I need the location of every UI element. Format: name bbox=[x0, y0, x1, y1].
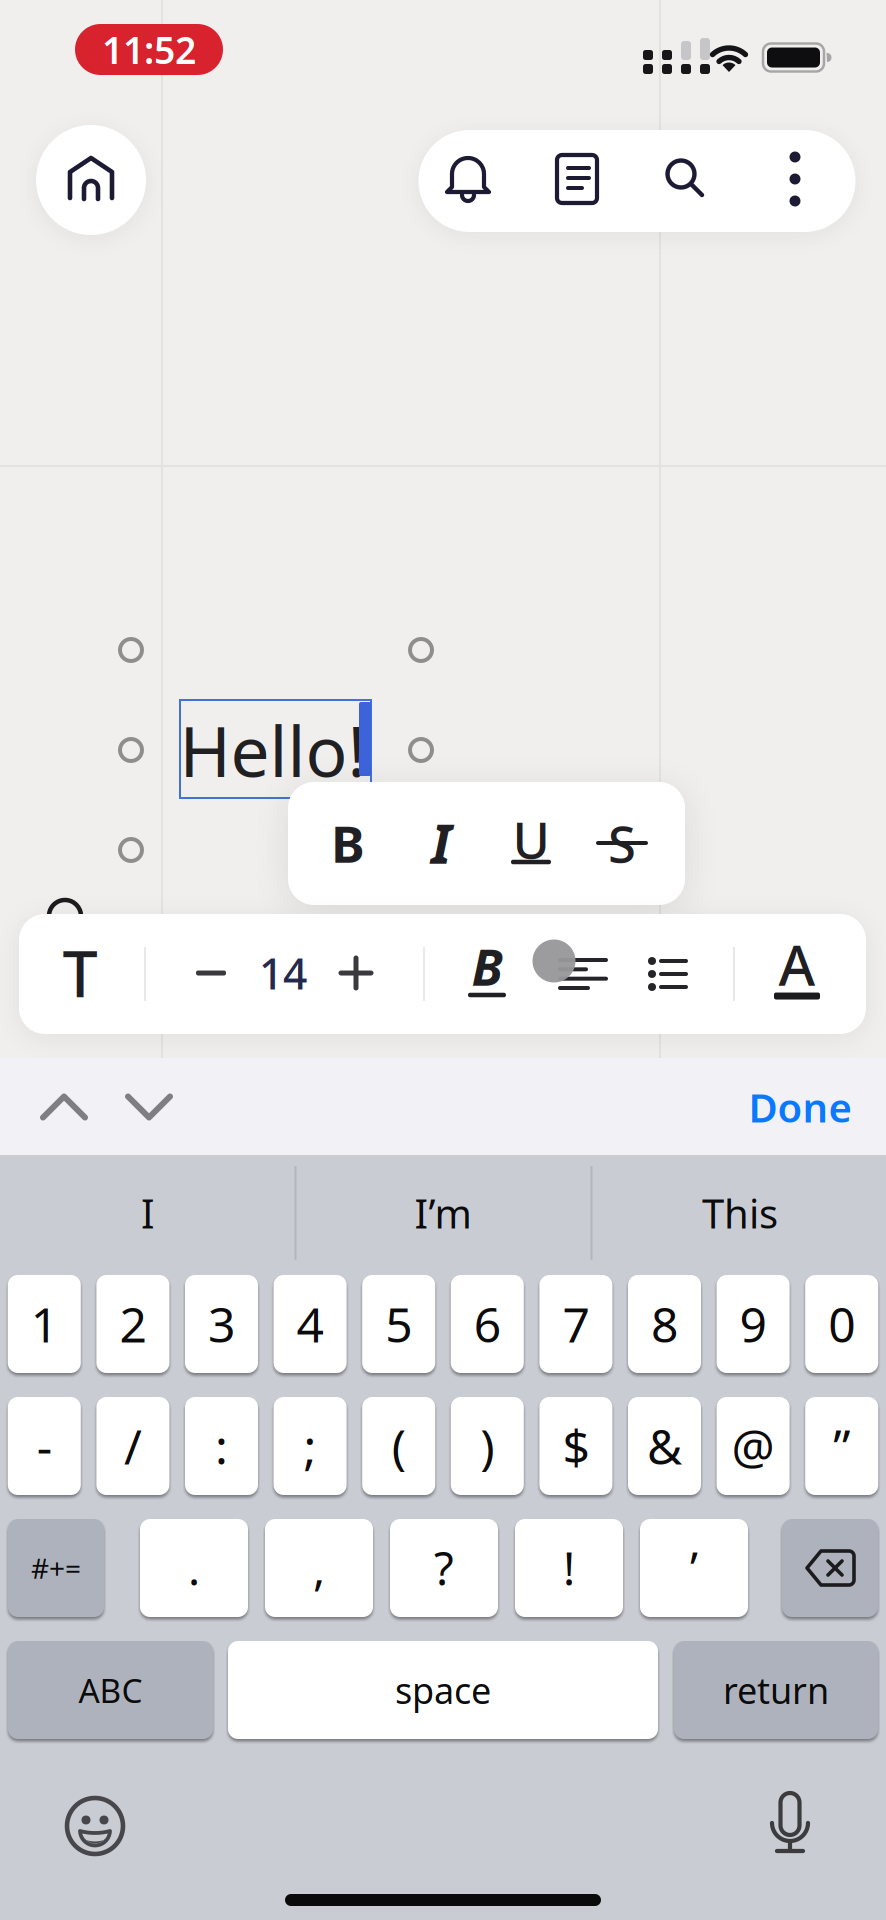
button[interactable]: Text style bbox=[45, 933, 115, 1013]
staticText: / bbox=[124, 1414, 142, 1478]
staticText: ( bbox=[392, 1414, 406, 1478]
staticText: ! bbox=[563, 1538, 575, 1598]
staticText: S bbox=[608, 809, 636, 877]
staticText: 14 bbox=[259, 945, 307, 1001]
button[interactable]: Notifications bbox=[442, 153, 494, 207]
staticText: - bbox=[37, 1414, 52, 1478]
staticText: B bbox=[331, 809, 365, 877]
button[interactable]: #+= bbox=[8, 1519, 104, 1617]
staticText: ; bbox=[304, 1414, 317, 1478]
staticText: A bbox=[778, 927, 815, 1001]
button[interactable]: Delete bbox=[782, 1519, 878, 1617]
button[interactable]: Next field bbox=[114, 1077, 184, 1137]
staticText: I’m bbox=[414, 1186, 471, 1239]
button[interactable]: Search bbox=[661, 154, 711, 204]
button[interactable]: Strikethrough bbox=[587, 803, 657, 883]
staticText: ? bbox=[434, 1538, 454, 1598]
button[interactable]: Increase font size bbox=[326, 938, 386, 1008]
button[interactable]: Italic bbox=[406, 803, 476, 883]
staticText: 9 bbox=[740, 1292, 767, 1356]
staticText: I bbox=[431, 807, 451, 879]
staticText: 0 bbox=[828, 1292, 855, 1356]
staticText: 11:52 bbox=[102, 25, 196, 74]
button[interactable]: , bbox=[265, 1519, 373, 1617]
staticText: 1 bbox=[31, 1292, 58, 1356]
button[interactable]: Bold bbox=[313, 803, 383, 883]
button[interactable]: Text color bbox=[762, 936, 832, 1012]
staticText: ’ bbox=[690, 1538, 698, 1598]
button[interactable]: space bbox=[228, 1641, 658, 1739]
button[interactable]: ABC bbox=[8, 1641, 213, 1739]
staticText: , bbox=[313, 1538, 325, 1598]
button[interactable]: Done bbox=[730, 1077, 870, 1137]
staticText: return bbox=[723, 1666, 829, 1714]
staticText: ” bbox=[833, 1414, 850, 1478]
staticText: 4 bbox=[297, 1292, 324, 1356]
button[interactable]: 4 bbox=[274, 1275, 347, 1373]
button[interactable]: 7 bbox=[539, 1275, 612, 1373]
staticText: & bbox=[647, 1414, 682, 1478]
button[interactable]: I bbox=[8, 1163, 288, 1263]
button[interactable]: - bbox=[8, 1397, 81, 1495]
staticText: : bbox=[215, 1414, 228, 1478]
button[interactable]: I’m bbox=[303, 1163, 583, 1263]
button[interactable]: Home bbox=[36, 125, 146, 235]
staticText: This bbox=[702, 1186, 778, 1239]
staticText: 5 bbox=[385, 1292, 412, 1356]
button[interactable]: 2 bbox=[96, 1275, 169, 1373]
button[interactable]: Recording time bbox=[75, 24, 223, 75]
button[interactable]: return bbox=[674, 1641, 878, 1739]
staticText: 8 bbox=[651, 1292, 678, 1356]
button[interactable]: Decrease font size bbox=[181, 938, 241, 1008]
button[interactable]: 9 bbox=[717, 1275, 790, 1373]
staticText: T bbox=[62, 931, 97, 1015]
button[interactable]: ( bbox=[362, 1397, 435, 1495]
staticText: I bbox=[141, 1186, 155, 1239]
button[interactable]: 1 bbox=[8, 1275, 81, 1373]
button[interactable]: $ bbox=[539, 1397, 612, 1495]
button[interactable]: ” bbox=[805, 1397, 878, 1495]
staticText: 6 bbox=[474, 1292, 501, 1356]
staticText: @ bbox=[732, 1414, 775, 1478]
button[interactable]: 3 bbox=[185, 1275, 258, 1373]
button[interactable]: 8 bbox=[628, 1275, 701, 1373]
button[interactable]: 0 bbox=[805, 1275, 878, 1373]
button[interactable]: More options bbox=[789, 151, 801, 207]
staticText: 7 bbox=[562, 1292, 589, 1356]
button[interactable]: This bbox=[600, 1163, 880, 1263]
button[interactable]: : bbox=[185, 1397, 258, 1495]
button[interactable]: ; bbox=[274, 1397, 347, 1495]
button[interactable]: Alignment bbox=[558, 958, 608, 990]
staticText: #+= bbox=[31, 1549, 81, 1587]
button[interactable]: 6 bbox=[451, 1275, 524, 1373]
button[interactable]: . bbox=[140, 1519, 248, 1617]
button[interactable]: Previous field bbox=[29, 1077, 99, 1137]
button[interactable]: Bold bbox=[452, 933, 522, 1009]
button[interactable]: Emoji bbox=[63, 1794, 127, 1858]
staticText: space bbox=[395, 1666, 491, 1714]
button[interactable]: ! bbox=[515, 1519, 623, 1617]
staticText: $ bbox=[562, 1414, 589, 1478]
staticText: Done bbox=[748, 1080, 851, 1133]
button[interactable]: List bbox=[648, 959, 688, 989]
staticText: U bbox=[512, 805, 549, 873]
button[interactable]: Notes bbox=[555, 153, 599, 205]
button[interactable]: / bbox=[96, 1397, 169, 1495]
staticText: ABC bbox=[78, 1668, 142, 1712]
button[interactable]: Font size bbox=[248, 938, 318, 1008]
button[interactable]: ? bbox=[390, 1519, 498, 1617]
button[interactable]: Underline bbox=[496, 803, 566, 883]
staticText: 2 bbox=[119, 1292, 146, 1356]
button[interactable]: @ bbox=[717, 1397, 790, 1495]
button[interactable]: ) bbox=[451, 1397, 524, 1495]
staticText: 3 bbox=[208, 1292, 235, 1356]
staticText: B bbox=[471, 932, 502, 1000]
button[interactable]: 5 bbox=[362, 1275, 435, 1373]
staticText: Hello! bbox=[179, 704, 366, 796]
staticText: . bbox=[188, 1538, 200, 1598]
button[interactable]: ’ bbox=[640, 1519, 748, 1617]
staticText: ) bbox=[480, 1414, 494, 1478]
button[interactable]: & bbox=[628, 1397, 701, 1495]
button[interactable]: Dictate bbox=[770, 1792, 810, 1856]
